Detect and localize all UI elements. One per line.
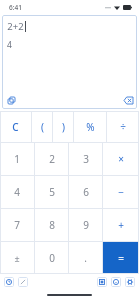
staticText: ± xyxy=(14,252,20,264)
button[interactable]: 2 xyxy=(35,143,68,175)
staticText: 5 xyxy=(49,185,55,199)
staticText: + xyxy=(118,218,124,232)
staticText: 6 xyxy=(83,185,89,199)
button[interactable]: 6 xyxy=(69,176,102,208)
staticText: 7 xyxy=(14,218,20,232)
button[interactable]: 4 xyxy=(0,176,34,208)
staticText: 9 xyxy=(83,218,89,232)
button[interactable]: 9 xyxy=(69,209,102,241)
staticText: × xyxy=(118,152,124,166)
button[interactable]: + xyxy=(103,209,139,241)
staticText: 0 xyxy=(49,251,55,265)
staticText: − xyxy=(118,185,124,199)
button[interactable]: × xyxy=(103,143,139,175)
button[interactable]: − xyxy=(103,176,139,208)
staticText: . xyxy=(84,251,87,265)
staticText: % xyxy=(86,120,95,134)
staticText: ÷ xyxy=(120,120,126,134)
button[interactable]: 0 xyxy=(35,242,68,274)
button[interactable]: ( xyxy=(32,111,52,142)
button[interactable]: ± xyxy=(0,242,34,274)
button[interactable]: 5 xyxy=(35,176,68,208)
staticText: 6:41 xyxy=(9,3,22,12)
button[interactable]: ÷ xyxy=(107,111,139,142)
button[interactable]: 1 xyxy=(0,143,34,175)
button[interactable]: Copy result xyxy=(5,94,17,106)
staticText: 2+2 xyxy=(7,20,24,33)
button[interactable]: Fractions xyxy=(18,277,28,287)
staticText: C xyxy=(12,120,19,134)
button[interactable]: = xyxy=(103,242,139,274)
staticText: 4 xyxy=(7,39,12,51)
button[interactable]: History xyxy=(4,277,14,287)
button[interactable]: 8 xyxy=(35,209,68,241)
staticText: ) xyxy=(62,120,65,134)
button[interactable]: 7 xyxy=(0,209,34,241)
staticText: 8 xyxy=(49,218,55,232)
staticText: = xyxy=(118,251,124,265)
staticText: 2 xyxy=(49,152,55,166)
button[interactable]: % xyxy=(74,111,106,142)
button[interactable]: Backspace xyxy=(122,94,134,106)
button[interactable]: 3 xyxy=(69,143,102,175)
staticText: ( xyxy=(41,120,44,134)
button[interactable]: . xyxy=(69,242,102,274)
button[interactable]: Help xyxy=(111,277,121,287)
button[interactable]: Keypad xyxy=(97,277,107,287)
staticText: 3 xyxy=(83,152,89,166)
staticText: 1 xyxy=(14,152,20,166)
button[interactable]: C xyxy=(0,111,31,142)
button[interactable]: Settings xyxy=(125,277,135,287)
staticText: 4 xyxy=(14,185,20,199)
button[interactable]: ) xyxy=(53,111,73,142)
